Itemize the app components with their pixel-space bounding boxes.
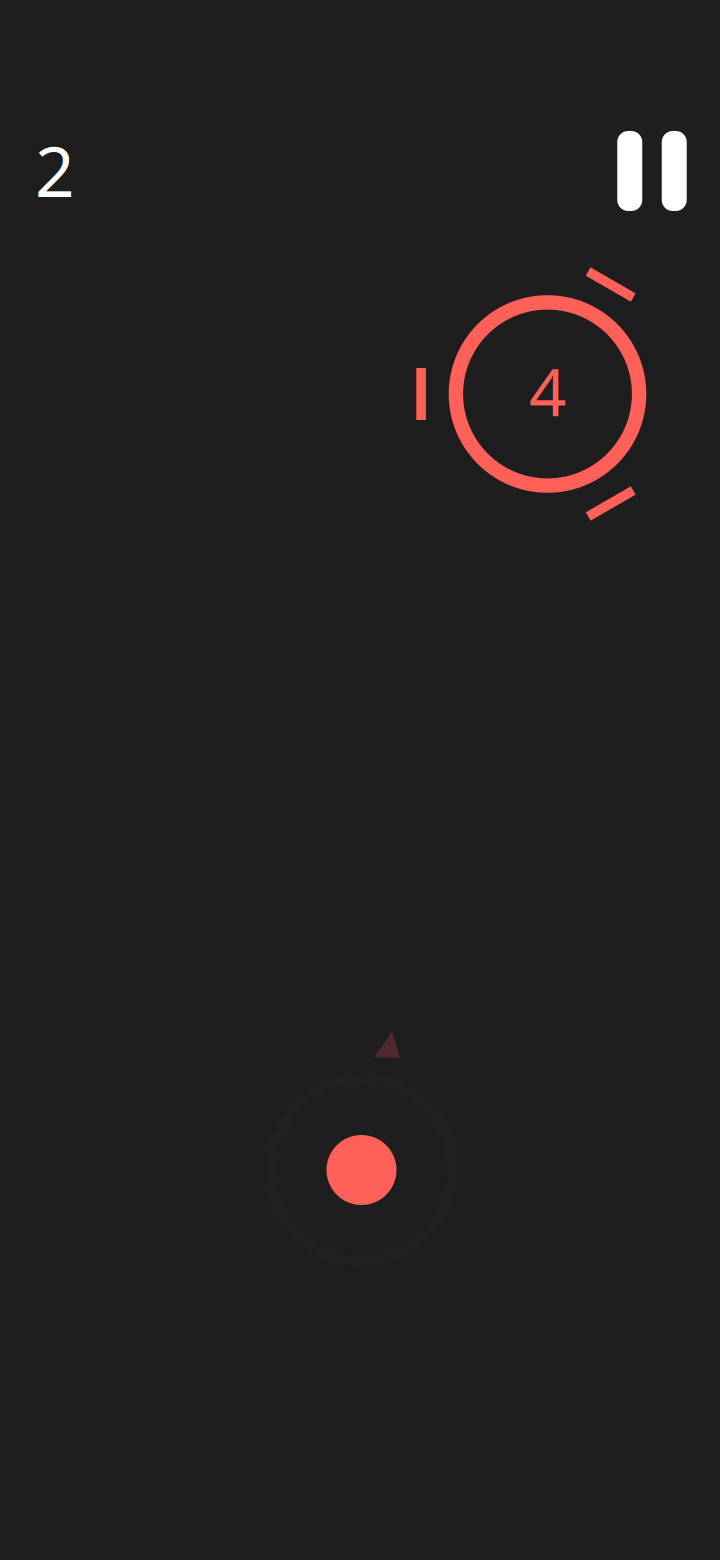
staticText: 4	[529, 348, 566, 434]
button[interactable]: Playfield	[0, 0, 720, 1560]
staticText: 2	[35, 124, 75, 216]
button[interactable]: Pause	[592, 111, 712, 231]
